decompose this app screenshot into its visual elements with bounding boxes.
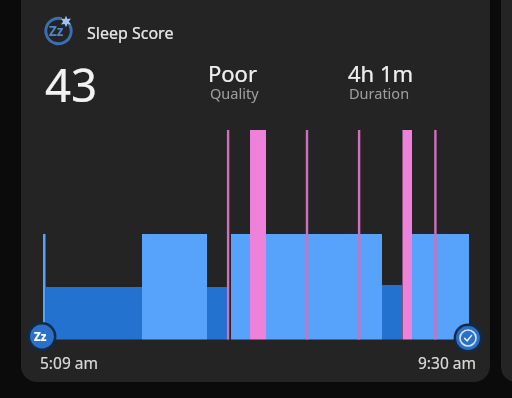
- staticText: Sleep Score: [87, 22, 174, 44]
- staticText: Duration: [349, 83, 410, 103]
- staticText: 5:09 am: [40, 352, 98, 373]
- staticText: Quality: [210, 83, 259, 103]
- button[interactable]: [21, 0, 490, 382]
- staticText: 4h 1m: [348, 58, 414, 88]
- staticText: 43: [45, 53, 98, 115]
- staticText: Zz: [34, 329, 47, 345]
- staticText: Poor: [208, 58, 258, 88]
- staticText: Zz: [49, 22, 64, 40]
- staticText: 9:30 am: [418, 352, 476, 373]
